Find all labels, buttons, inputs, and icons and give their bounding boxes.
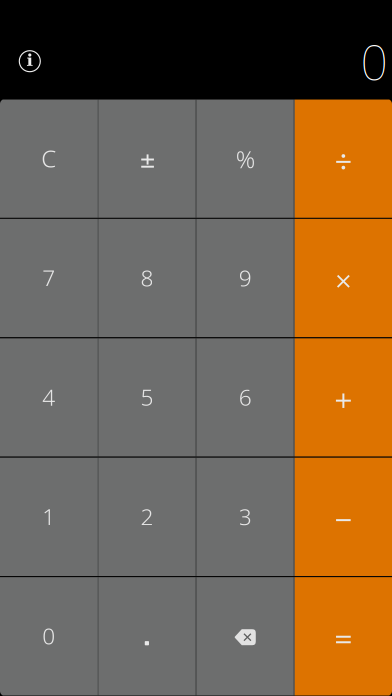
staticText: 5: [140, 382, 153, 412]
button[interactable]: Percent: [196, 99, 294, 218]
staticText: 0: [360, 30, 387, 94]
staticText: 1: [42, 501, 55, 531]
button[interactable]: 6: [196, 338, 294, 457]
button[interactable]: Decimal point: [98, 577, 195, 695]
button[interactable]: 0: [0, 577, 97, 695]
staticText: 6: [239, 382, 252, 412]
button[interactable]: Plus minus: [98, 99, 195, 218]
staticText: 4: [42, 382, 55, 412]
button[interactable]: Clear: [0, 99, 97, 218]
button[interactable]: Backspace: [196, 577, 294, 695]
button[interactable]: 2: [98, 458, 195, 576]
button[interactable]: Multiply: [295, 219, 392, 337]
button[interactable]: 5: [98, 338, 195, 457]
button[interactable]: Divide: [295, 99, 392, 218]
staticText: 3: [239, 501, 252, 531]
staticText: 7: [42, 262, 55, 293]
button[interactable]: 7: [0, 219, 97, 337]
button[interactable]: 3: [196, 458, 294, 576]
staticText: C: [41, 142, 56, 174]
button[interactable]: 9: [196, 219, 294, 337]
button[interactable]: Equals: [295, 577, 392, 695]
staticText: 0: [42, 621, 55, 651]
button[interactable]: About this calculator: [8, 39, 52, 83]
button[interactable]: 8: [98, 219, 195, 337]
button[interactable]: 1: [0, 458, 97, 576]
staticText: 9: [239, 262, 252, 293]
staticText: %: [236, 143, 255, 175]
button[interactable]: 4: [0, 338, 97, 457]
button[interactable]: Add: [295, 338, 392, 457]
staticText: 8: [140, 262, 153, 293]
button[interactable]: Subtract: [295, 458, 392, 576]
staticText: 2: [140, 501, 153, 531]
